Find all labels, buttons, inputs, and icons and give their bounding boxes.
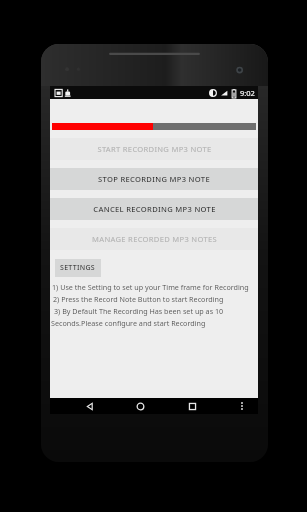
staticText: 9:02 xyxy=(240,88,255,98)
staticText: SETTINGS xyxy=(60,263,96,273)
button[interactable]: SETTINGS xyxy=(55,259,101,277)
button[interactable]: MANAGE RECORDED MP3 NOTES xyxy=(50,228,258,250)
button[interactable]: STOP RECORDING MP3 NOTE xyxy=(50,168,258,190)
staticText: START RECORDING MP3 NOTE xyxy=(97,144,212,154)
button[interactable]: START RECORDING MP3 NOTE xyxy=(50,138,258,160)
button[interactable]: Back xyxy=(76,398,102,414)
staticText: 2) Press the Record Note Button to start… xyxy=(53,294,224,304)
staticText: STOP RECORDING MP3 NOTE xyxy=(98,174,210,184)
button[interactable]: Recent apps xyxy=(179,398,205,414)
staticText: CANCEL RECORDING MP3 NOTE xyxy=(93,204,216,214)
staticText: Seconds.Please configure and start Recor… xyxy=(51,318,206,328)
button[interactable]: CANCEL RECORDING MP3 NOTE xyxy=(50,198,258,220)
button[interactable]: More options xyxy=(231,398,253,414)
button[interactable]: Home xyxy=(127,398,153,414)
staticText: 3) By Default The Recording Has been set… xyxy=(54,306,224,316)
staticText: 1) Use the Setting to set up your Time f… xyxy=(52,282,249,292)
staticText: MANAGE RECORDED MP3 NOTES xyxy=(92,234,217,244)
